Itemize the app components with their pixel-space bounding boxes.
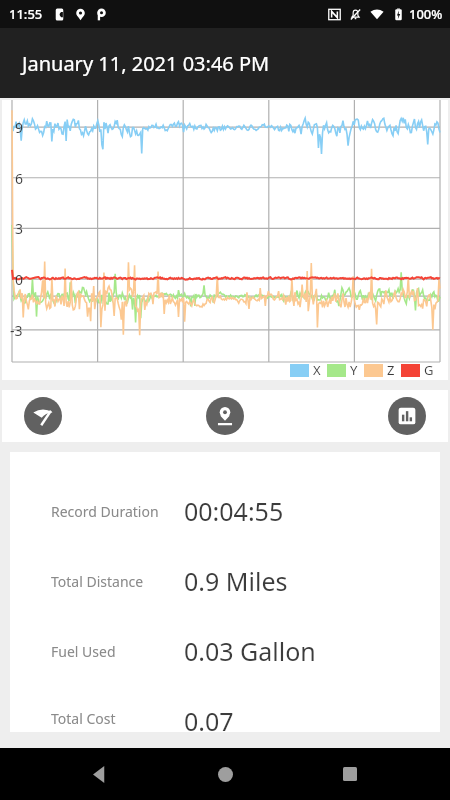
staticText: 3 xyxy=(15,219,24,238)
button[interactable]: Total Cost xyxy=(10,704,440,732)
button[interactable]: Home xyxy=(203,752,247,796)
staticText: 0 xyxy=(15,270,24,289)
staticText: Fuel Used xyxy=(51,642,116,661)
staticText: January 11, 2021 03:46 PM xyxy=(22,50,270,77)
staticText: Z xyxy=(387,361,395,379)
button[interactable]: Connection speed xyxy=(24,397,62,435)
staticText: 6 xyxy=(15,169,24,188)
staticText: -3 xyxy=(10,321,23,340)
staticText: X xyxy=(313,361,321,379)
staticText: Record Duration xyxy=(51,502,159,521)
staticText: 0.9 Miles xyxy=(184,564,288,598)
staticText: 0.07 xyxy=(184,704,234,732)
staticText: 9 xyxy=(15,118,24,137)
staticText: Total Cost xyxy=(51,709,116,728)
staticText: 100% xyxy=(409,5,443,23)
button[interactable]: Recent apps xyxy=(328,752,372,796)
staticText: Y xyxy=(350,361,358,379)
staticText: 0.03 Gallon xyxy=(184,634,316,668)
staticText: 00:04:55 xyxy=(184,494,284,528)
button[interactable]: Statistics xyxy=(388,397,426,435)
staticText: 11:55 xyxy=(9,5,43,23)
staticText: Total Distance xyxy=(51,572,144,591)
button[interactable]: Location xyxy=(206,397,244,435)
staticText: G xyxy=(424,361,434,379)
button[interactable]: Total Distance xyxy=(10,564,440,598)
button[interactable]: Fuel Used xyxy=(10,634,440,668)
button[interactable]: Record Duration xyxy=(10,494,440,528)
button[interactable]: Back xyxy=(78,752,122,796)
